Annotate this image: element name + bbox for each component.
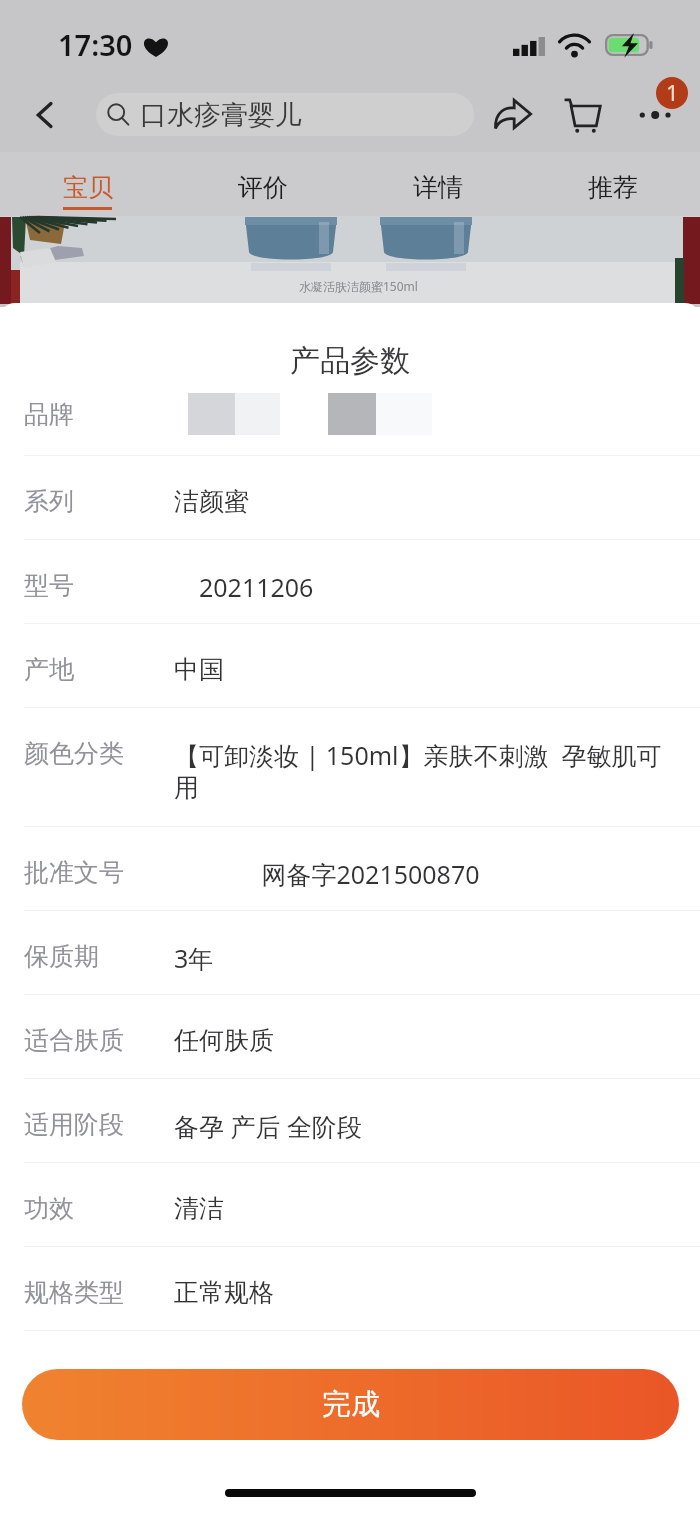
staticText: 品牌 — [24, 399, 74, 430]
button[interactable]: 规格类型 — [0, 1247, 700, 1331]
button[interactable]: 适用阶段 — [0, 1079, 700, 1163]
staticText: 保质期 — [24, 941, 99, 972]
staticText: 产品参数 — [0, 342, 700, 380]
staticText: 正常规格 — [174, 1277, 674, 1308]
staticText: 功效 — [24, 1193, 74, 1224]
staticText: 型号 — [24, 570, 74, 601]
staticText: 网备字2021500870 — [174, 857, 674, 891]
staticText: 详情 — [413, 172, 463, 203]
staticText: 口水疹膏婴儿 — [140, 98, 302, 132]
staticText: 3年 — [174, 941, 674, 975]
button[interactable]: 适合肤质 — [0, 995, 700, 1079]
button[interactable]: 系列 — [0, 456, 700, 540]
button[interactable]: 颜色分类 — [0, 708, 700, 827]
button[interactable]: 型号 — [0, 540, 700, 624]
button[interactable]: 详情 — [350, 172, 525, 220]
staticText: 规格类型 — [24, 1277, 124, 1308]
button[interactable]: Shopping cart — [555, 87, 611, 143]
staticText: 17:30 — [58, 25, 133, 64]
staticText: 水凝活肤洁颜蜜150ml — [299, 278, 418, 294]
staticText: 宝贝 — [63, 172, 113, 203]
staticText: 1 — [666, 77, 679, 107]
button[interactable]: 完成 — [22, 1369, 679, 1440]
button[interactable]: Share — [484, 86, 540, 142]
staticText: 颜色分类 — [24, 738, 124, 769]
button[interactable]: 宝贝 — [0, 172, 175, 220]
button[interactable]: 评价 — [175, 172, 350, 220]
staticText: 洁颜蜜 — [174, 486, 674, 517]
button[interactable]: 口水疹膏婴儿 — [96, 93, 474, 136]
button[interactable]: 推荐 — [525, 172, 700, 220]
staticText: 适合肤质 — [24, 1025, 124, 1056]
button[interactable]: 产地 — [0, 624, 700, 708]
staticText: 【可卸淡妆 | 150ml】亲肤不刺激 孕敏肌可用 — [174, 738, 674, 804]
button[interactable]: Back — [16, 86, 73, 143]
staticText: 中国 — [174, 654, 674, 685]
staticText: 适用阶段 — [24, 1109, 124, 1140]
button[interactable]: 批准文号 — [0, 827, 700, 911]
staticText: 20211206 — [174, 570, 674, 604]
button[interactable]: 保质期 — [0, 911, 700, 995]
staticText: 完成 — [322, 1386, 380, 1423]
staticText: 产地 — [24, 654, 74, 685]
staticText: 推荐 — [588, 172, 638, 203]
staticText: 备孕 产后 全阶段 — [174, 1109, 674, 1143]
staticText: 批准文号 — [24, 857, 124, 888]
staticText: 任何肤质 — [174, 1025, 674, 1056]
button[interactable]: More options — [620, 96, 690, 136]
staticText: 评价 — [238, 172, 288, 203]
staticText: 清洁 — [174, 1193, 674, 1224]
staticText: 系列 — [24, 486, 74, 517]
button[interactable]: 功效 — [0, 1163, 700, 1247]
button[interactable]: 品牌 — [0, 372, 700, 456]
